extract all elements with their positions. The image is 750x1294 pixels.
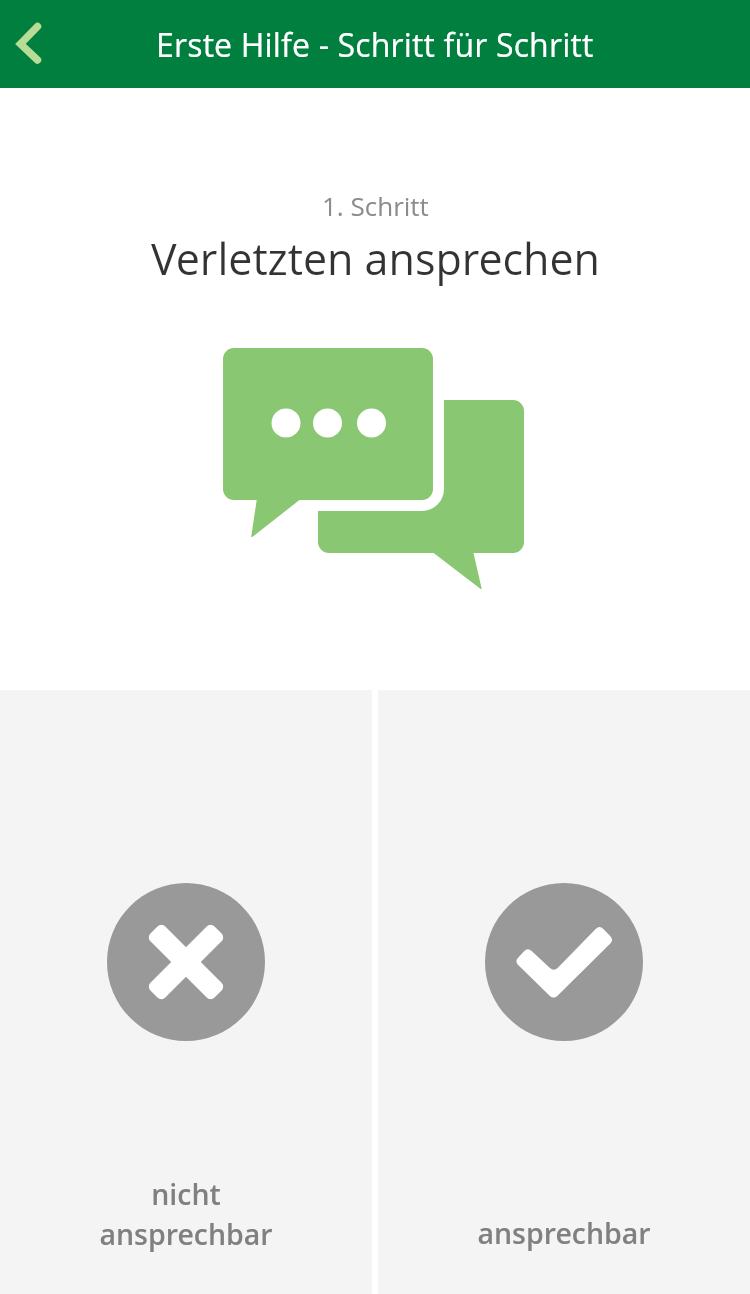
staticText: 1. Schritt [322, 188, 429, 223]
button[interactable]: ansprechbar [378, 690, 750, 1294]
staticText: Erste Hilfe - Schritt für Schritt [156, 23, 594, 67]
button[interactable]: Back [0, 0, 72, 88]
staticText: nicht ansprechbar [99, 1175, 273, 1253]
button[interactable]: nicht ansprechbar [0, 690, 372, 1294]
staticText: ansprechbar [477, 1214, 651, 1253]
staticText: Verletzten ansprechen [151, 229, 600, 288]
